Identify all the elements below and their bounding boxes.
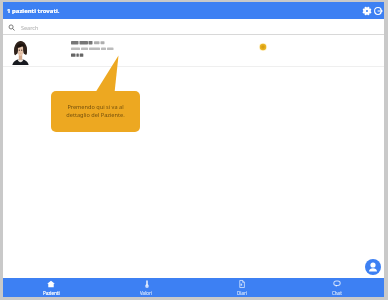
button[interactable]: Diari: [194, 278, 289, 297]
staticText: Search: [21, 24, 39, 31]
button[interactable]: Premendo qui si va al dettaglio del Pazi…: [51, 91, 140, 132]
button[interactable]: Settings: [361, 2, 372, 19]
button[interactable]: Search: [3, 19, 384, 35]
button[interactable]: [3, 35, 384, 67]
staticText: Pazienti: [43, 290, 60, 296]
button[interactable]: Add patient: [365, 259, 381, 275]
staticText: Diari: [237, 290, 247, 296]
staticText: Chat: [332, 290, 342, 296]
button[interactable]: Valori: [99, 278, 194, 297]
staticText: Premendo qui si va al dettaglio del Pazi…: [66, 103, 125, 119]
button[interactable]: Pazienti: [3, 278, 99, 297]
button[interactable]: Logout: [372, 2, 383, 19]
staticText: Valori: [140, 290, 153, 296]
staticText: 1 pazienti trovati.: [7, 7, 60, 15]
button[interactable]: Chat: [289, 278, 384, 297]
